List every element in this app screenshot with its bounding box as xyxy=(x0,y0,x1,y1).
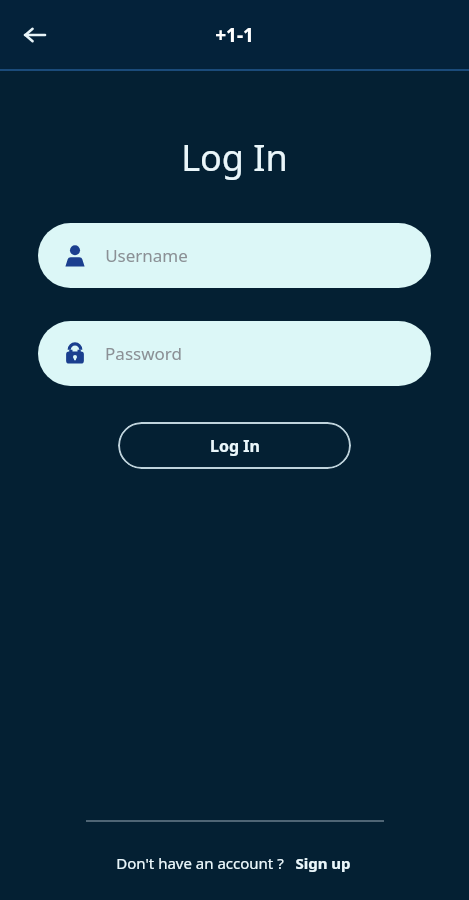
staticText: Log In xyxy=(181,133,288,182)
staticText: Username xyxy=(105,244,188,267)
button[interactable]: Sign up xyxy=(293,851,353,875)
staticText: Sign up xyxy=(295,853,351,873)
button[interactable]: Back xyxy=(13,13,57,57)
button[interactable]: Password xyxy=(38,321,431,386)
button[interactable]: Username xyxy=(38,223,431,288)
staticText: Password xyxy=(105,342,182,365)
button[interactable]: Log In xyxy=(118,422,351,469)
staticText: Don't have an account ? xyxy=(116,853,284,873)
staticText: +1-1 xyxy=(215,22,254,48)
staticText: Log In xyxy=(210,435,260,457)
